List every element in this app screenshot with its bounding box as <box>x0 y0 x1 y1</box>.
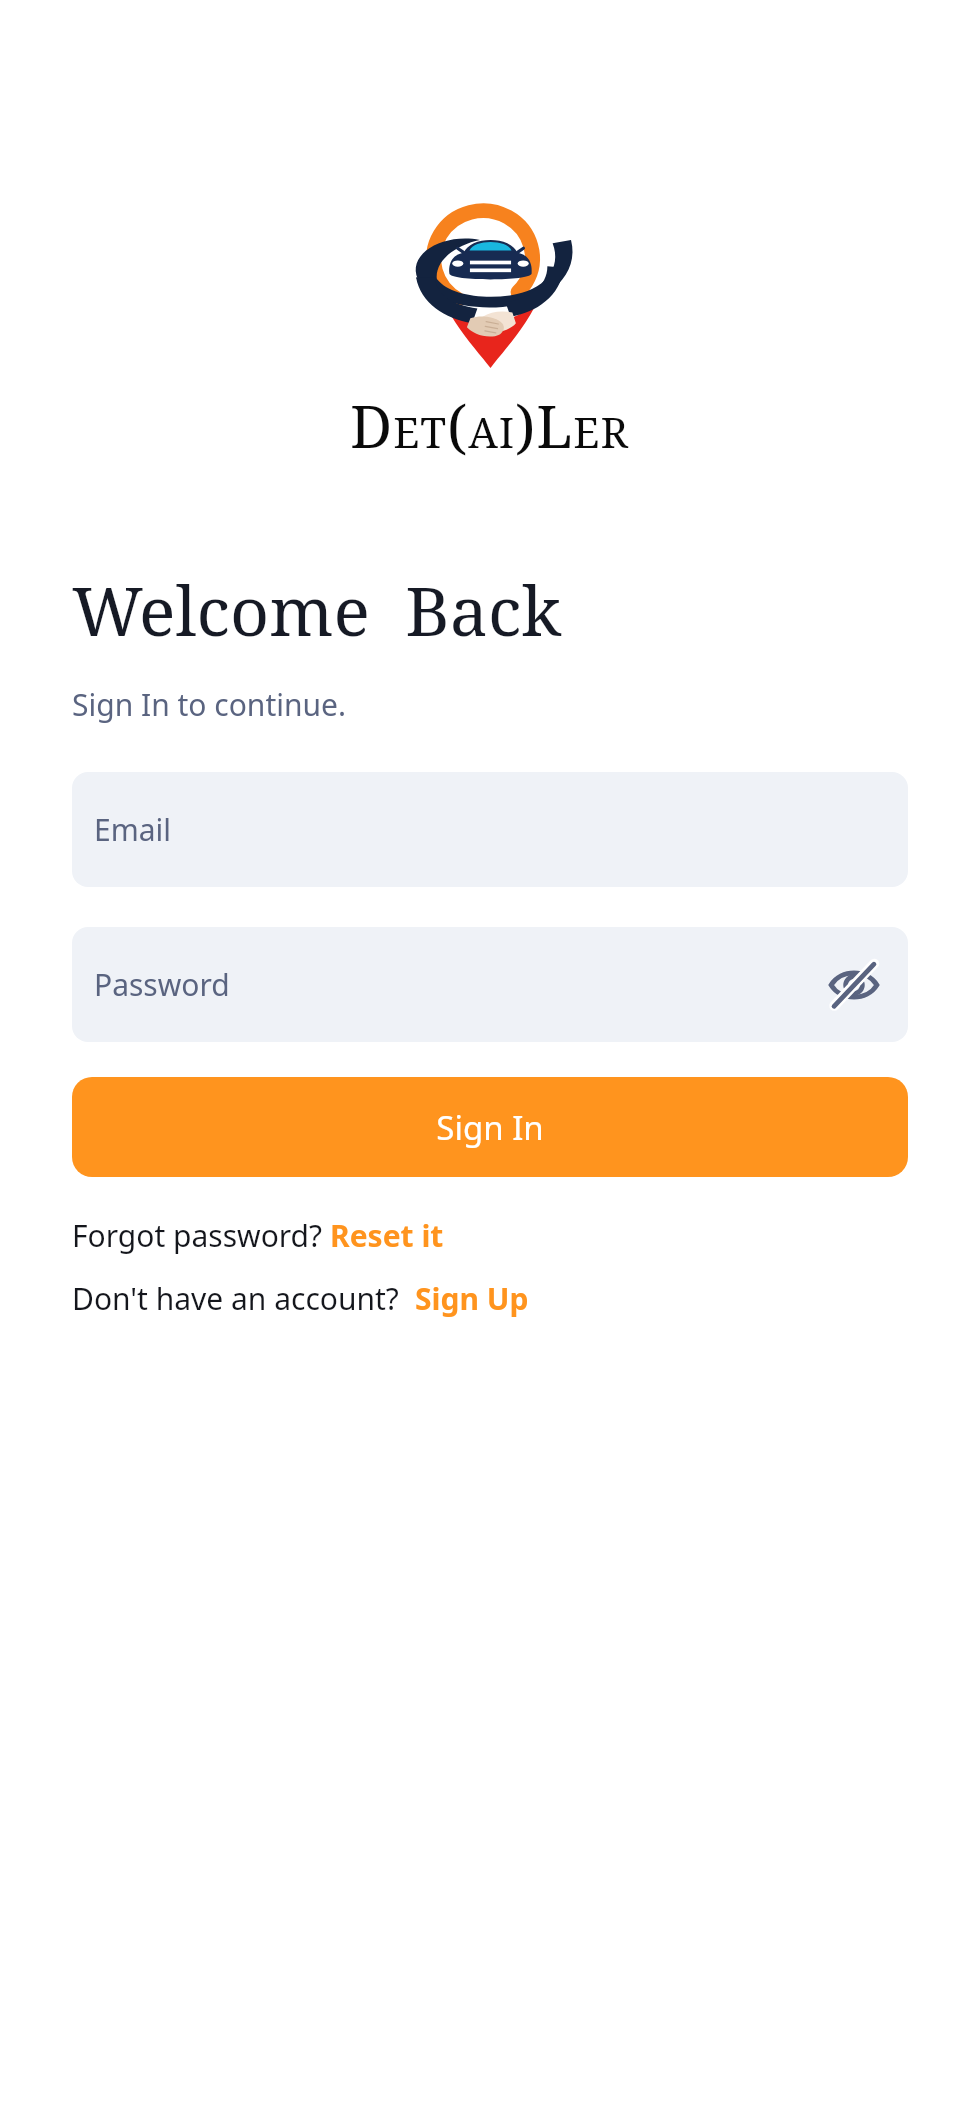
button[interactable]: Show password <box>818 949 890 1021</box>
staticText: Forgot password? <box>72 1215 330 1256</box>
staticText: DET(AI)LER <box>350 386 630 465</box>
staticText: Don't have an account? <box>72 1278 415 1319</box>
button[interactable]: Sign In <box>72 1077 908 1177</box>
staticText: Password <box>94 964 230 1005</box>
staticText: Email <box>94 809 172 850</box>
button[interactable]: Email <box>72 772 908 887</box>
staticText: Reset it <box>330 1215 444 1256</box>
button[interactable]: Don't have an account? <box>72 1278 529 1319</box>
button[interactable]: Forgot password? <box>72 1215 444 1256</box>
staticText: Welcome Back <box>72 563 562 656</box>
button[interactable]: Password <box>72 927 908 1042</box>
staticText: Sign In <box>436 1105 544 1150</box>
staticText: Sign In to continue. <box>72 684 346 725</box>
staticText: Sign Up <box>415 1278 529 1319</box>
